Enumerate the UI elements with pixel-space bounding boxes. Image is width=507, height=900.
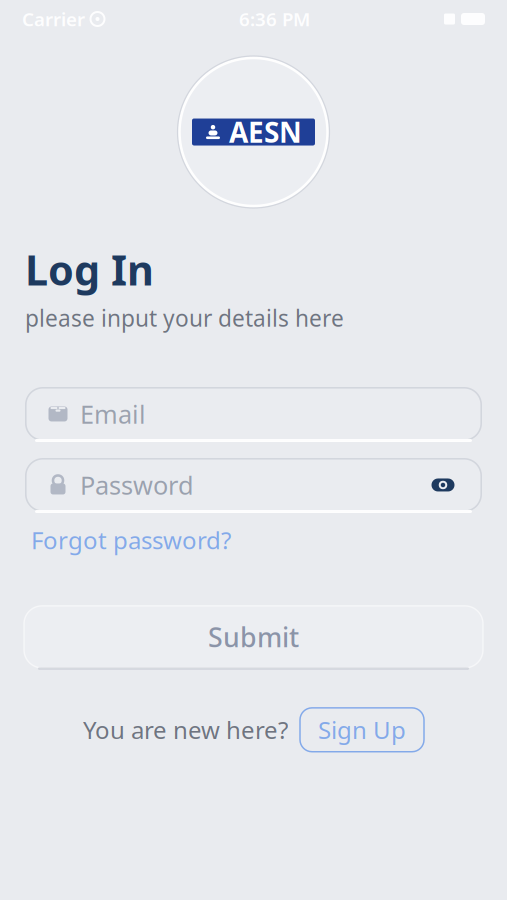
button[interactable]: Show password	[427, 469, 459, 501]
staticText: please input your details here	[25, 303, 344, 333]
staticText: Carrier	[22, 7, 85, 31]
staticText: AESN	[229, 113, 302, 151]
staticText: Password	[80, 468, 194, 502]
staticText: Forgot password?	[31, 524, 231, 556]
staticText: Log In	[25, 242, 154, 297]
staticText: You are new here?	[83, 714, 288, 746]
staticText: Email	[80, 397, 146, 431]
button[interactable]: Submit	[24, 606, 483, 668]
staticText: 6:36 PM	[239, 7, 310, 31]
button[interactable]: Forgot password?	[31, 524, 231, 556]
button[interactable]: Sign Up	[300, 708, 424, 752]
staticText: Submit	[208, 619, 299, 655]
staticText: Sign Up	[318, 714, 406, 746]
